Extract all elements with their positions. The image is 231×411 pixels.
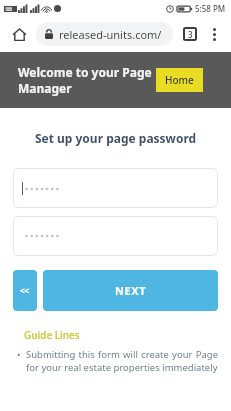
staticText: • <box>17 348 21 360</box>
staticText: released-units.com/new <box>59 27 163 42</box>
staticText: << <box>20 285 30 296</box>
staticText: NEXT <box>115 283 147 298</box>
button[interactable]: Home <box>6 21 32 47</box>
button[interactable]: released-units.com/new <box>36 22 173 46</box>
staticText: Set up your page password <box>0 130 231 146</box>
staticText: Submitting this form will create your Pa… <box>26 348 218 374</box>
staticText: 3 <box>188 29 193 40</box>
staticText: Welcome to your Page Manager <box>18 64 157 96</box>
button[interactable] <box>13 168 218 208</box>
staticText: 5:58 PM <box>195 3 226 14</box>
staticText: Guide Lines <box>24 328 80 342</box>
button[interactable]: Back <box>13 270 37 311</box>
button[interactable]: More options <box>203 23 225 45</box>
button[interactable] <box>13 216 218 256</box>
button[interactable]: Home <box>156 68 203 92</box>
button[interactable]: NEXT <box>43 270 218 311</box>
staticText: Home <box>165 73 194 87</box>
button[interactable]: Tabs, 3 open <box>179 23 201 45</box>
